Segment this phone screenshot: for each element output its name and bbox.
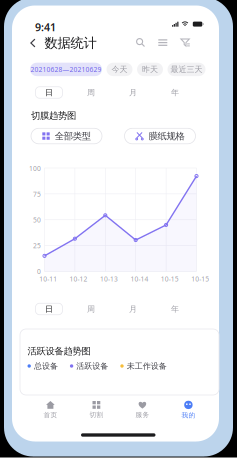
button[interactable]: 周 [70,86,112,99]
button[interactable]: 膜纸规格 [124,128,195,144]
button[interactable]: 日 [28,302,70,315]
staticText: 10-15 [191,275,209,283]
staticText: 膜纸规格 [149,130,185,142]
staticText: 月 [129,304,137,314]
button[interactable]: 日 [28,86,70,99]
staticText: 日 [45,304,53,314]
button[interactable]: 今天 [106,63,132,76]
button[interactable]: 年 [154,302,196,315]
button[interactable]: 数据统计 [30,36,96,50]
staticText: 20210628—20210629 [30,65,101,74]
staticText: 月 [129,88,137,97]
staticText: 0 [37,267,41,276]
button[interactable]: 昨天 [137,63,163,76]
button[interactable]: 服务 [119,402,165,418]
staticText: 最近三天 [170,64,202,74]
staticText: 数据统计 [44,35,96,51]
staticText: 10-14 [130,275,148,283]
staticText: 昨天 [142,64,158,74]
staticText: 75 [33,190,41,199]
button[interactable]: 20210628—20210629 [30,63,102,76]
staticText: 年 [171,88,179,97]
staticText: 今天 [111,64,127,74]
staticText: 10-11 [39,275,57,283]
staticText: 活跃设备 [76,361,108,371]
button[interactable]: 周 [70,302,112,315]
staticText: 日 [45,88,53,97]
staticText: 切膜趋势图 [31,110,76,121]
button[interactable]: 最近三天 [167,63,205,76]
staticText: 服务 [135,411,149,419]
staticText: 年 [171,304,179,314]
staticText: 10-13 [100,275,118,283]
staticText: 10-12 [70,275,88,283]
button[interactable]: Filter [180,37,190,47]
staticText: 首页 [43,411,57,419]
staticText: 周 [87,304,95,314]
button[interactable]: 月 [112,302,154,315]
button[interactable]: 切割 [73,402,119,418]
staticText: 切割 [89,411,103,419]
staticText: 活跃设备趋势图 [27,345,90,357]
staticText: 周 [87,88,95,97]
button[interactable]: Menu [158,37,168,47]
staticText: 100 [29,164,41,173]
button[interactable]: 全部类型 [31,128,102,144]
button[interactable]: 月 [112,86,154,99]
staticText: 总设备 [34,361,58,371]
button[interactable]: Search [135,37,145,47]
staticText: 50 [33,216,41,224]
button[interactable]: 我的 [165,402,211,418]
staticText: 10-15 [161,275,179,283]
staticText: 全部类型 [55,130,91,142]
staticText: 25 [33,241,41,250]
button[interactable]: 首页 [27,402,73,418]
staticText: 未工作设备 [127,361,167,371]
button[interactable]: 年 [154,86,196,99]
staticText: 9:41 [35,20,56,34]
staticText: 我的 [181,411,195,419]
